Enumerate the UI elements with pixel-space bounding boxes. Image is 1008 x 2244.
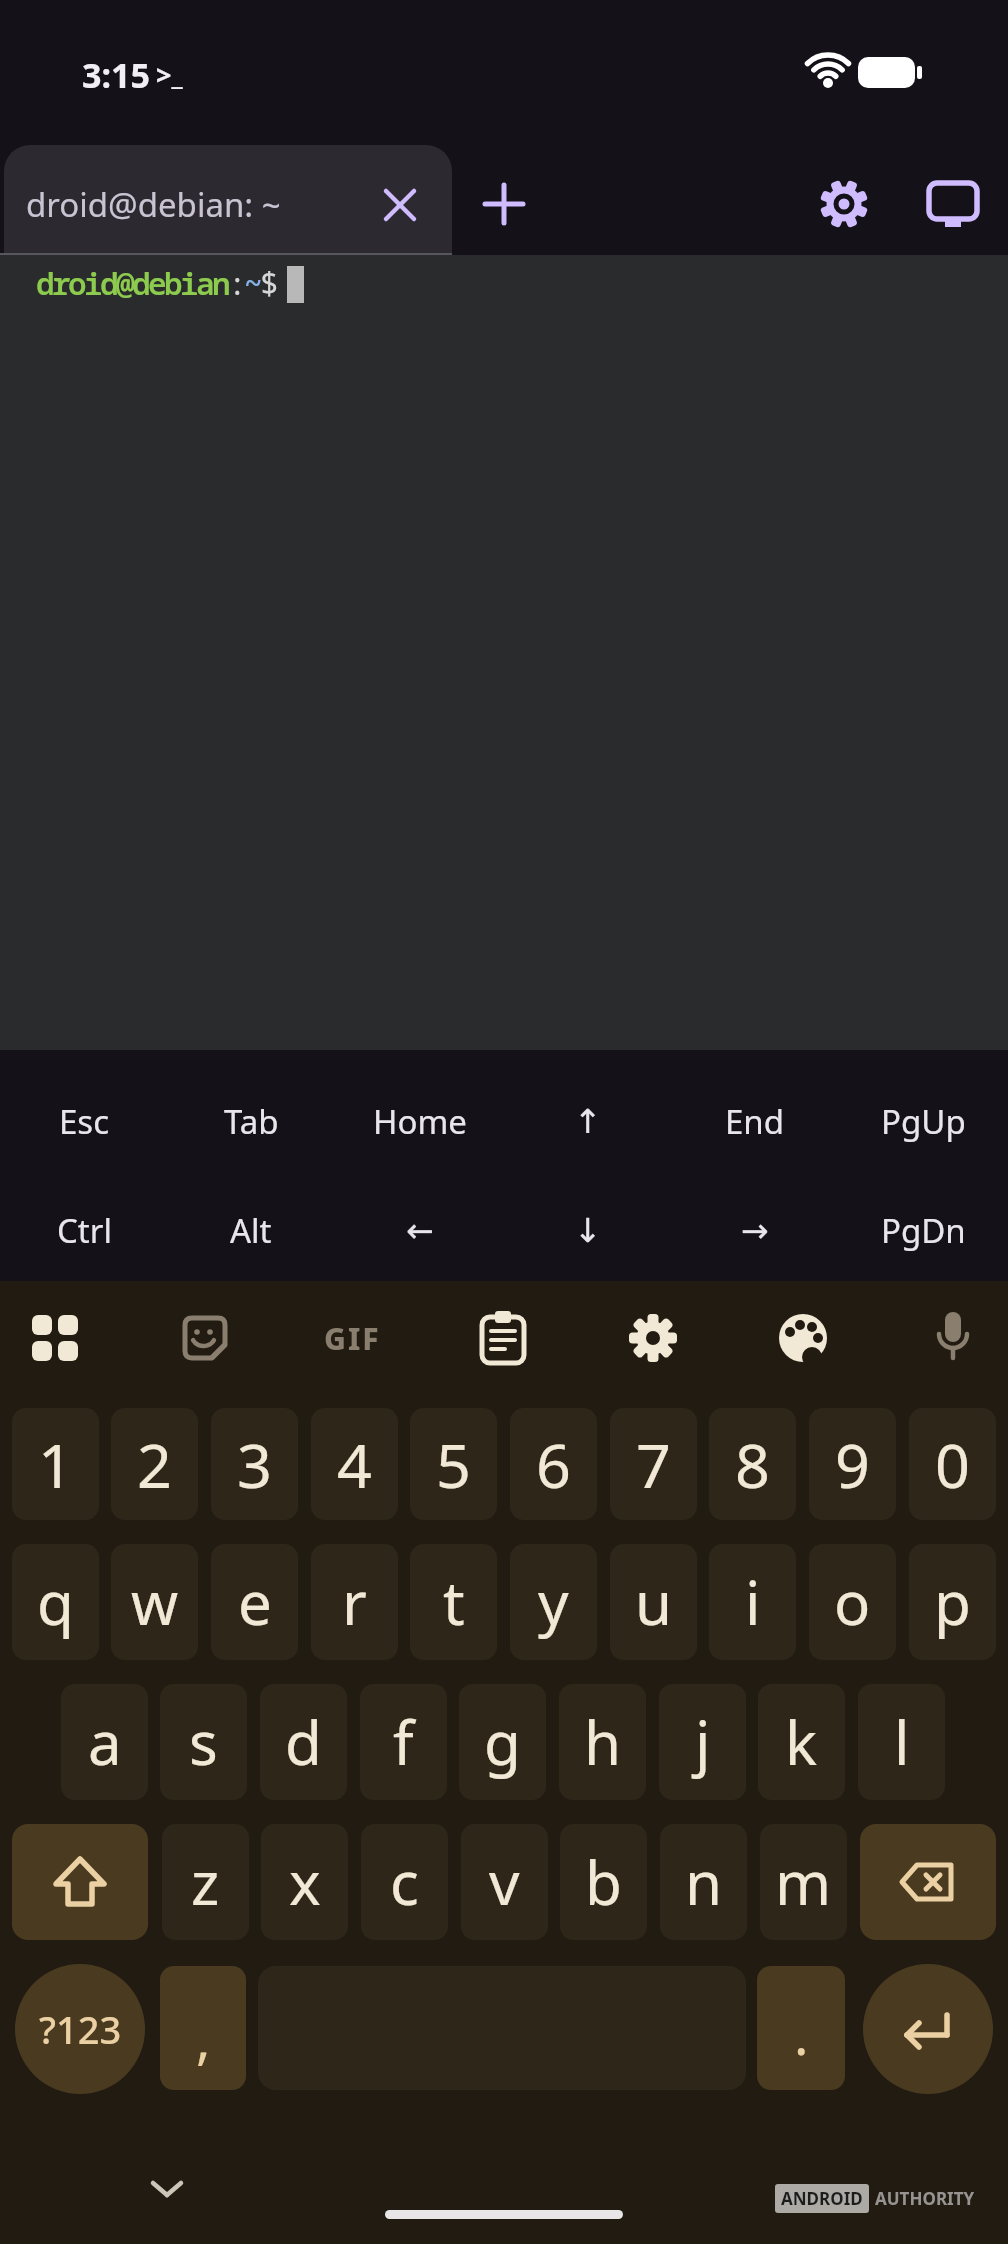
button[interactable]: d [260, 1684, 347, 1800]
staticText: 3:15 [82, 52, 150, 98]
button[interactable]: m [760, 1824, 847, 1940]
button[interactable]: w [111, 1544, 198, 1660]
staticText: o [834, 1561, 871, 1643]
staticText: → [741, 1211, 769, 1249]
staticText: e [238, 1561, 272, 1643]
staticText: b [585, 1841, 622, 1923]
staticText: 9 [835, 1423, 870, 1506]
button[interactable]: e [211, 1544, 298, 1660]
button[interactable] [928, 180, 978, 230]
staticText: ↑ [574, 1102, 602, 1140]
button[interactable]: . [757, 1966, 845, 2090]
button[interactable]: p [909, 1544, 996, 1660]
button[interactable]: a [61, 1684, 148, 1800]
staticText: , [196, 2001, 211, 2075]
staticText: Alt [230, 1208, 272, 1253]
button[interactable]: z [162, 1824, 249, 1940]
button[interactable]: b [560, 1824, 647, 1940]
staticText: 2 [137, 1423, 172, 1506]
staticText: m [775, 1841, 832, 1923]
staticText: PgDn [881, 1208, 966, 1253]
button[interactable]: s [160, 1684, 247, 1800]
button[interactable]: ← [350, 1197, 490, 1263]
button[interactable]: 5 [410, 1408, 497, 1520]
button[interactable]: GIF [302, 1312, 402, 1364]
staticText: ?123 [39, 2003, 122, 2055]
staticText: Home [373, 1099, 467, 1144]
staticText: y [538, 1561, 569, 1643]
button[interactable]: , [160, 1966, 246, 2090]
button[interactable]: r [311, 1544, 398, 1660]
staticText: ANDROID [781, 2187, 863, 2210]
button[interactable]: t [410, 1544, 497, 1660]
button[interactable]: c [361, 1824, 448, 1940]
button[interactable] [182, 1315, 228, 1361]
button[interactable] [778, 1313, 828, 1363]
button[interactable]: x [261, 1824, 348, 1940]
button[interactable] [479, 1311, 527, 1365]
button[interactable] [628, 1313, 678, 1363]
button[interactable]: 8 [709, 1408, 796, 1520]
button[interactable]: Alt [181, 1197, 321, 1263]
button[interactable]: Home [350, 1088, 490, 1154]
button[interactable] [485, 185, 523, 223]
button[interactable]: l [858, 1684, 945, 1800]
button[interactable] [31, 1314, 79, 1362]
staticText: PgUp [881, 1099, 966, 1144]
button[interactable]: q [12, 1544, 99, 1660]
button[interactable]: 3 [211, 1408, 298, 1520]
staticText: 4 [337, 1423, 372, 1506]
button[interactable]: j [659, 1684, 746, 1800]
button[interactable]: PgDn [853, 1197, 993, 1263]
staticText: Esc [59, 1099, 109, 1144]
button[interactable]: y [510, 1544, 597, 1660]
button[interactable]: 6 [510, 1408, 597, 1520]
button[interactable]: droid@debian: ~ [4, 145, 452, 255]
button[interactable] [820, 180, 868, 228]
button[interactable]: 0 [909, 1408, 996, 1520]
button[interactable] [12, 1824, 148, 1940]
staticText: d [285, 1701, 322, 1783]
button[interactable] [860, 1824, 996, 1940]
button[interactable]: ↑ [518, 1088, 658, 1154]
staticText: ↓ [574, 1211, 602, 1249]
staticText: >_ [156, 56, 183, 93]
staticText: u [635, 1561, 673, 1643]
button[interactable]: Ctrl [14, 1197, 154, 1263]
button[interactable]: k [758, 1684, 845, 1800]
button[interactable]: Tab [181, 1088, 321, 1154]
button[interactable]: PgUp [853, 1088, 993, 1154]
button[interactable]: n [660, 1824, 747, 1940]
button[interactable]: ↓ [518, 1197, 658, 1263]
button[interactable]: o [809, 1544, 896, 1660]
button[interactable]: Esc [14, 1088, 154, 1154]
button[interactable]: f [360, 1684, 447, 1800]
button[interactable] [863, 1964, 993, 2094]
staticText: x [289, 1841, 321, 1923]
button[interactable]: u [610, 1544, 697, 1660]
button[interactable] [933, 1312, 973, 1364]
button[interactable]: 7 [610, 1408, 697, 1520]
button[interactable]: h [559, 1684, 646, 1800]
staticText: 7 [636, 1423, 671, 1506]
button[interactable]: g [459, 1684, 546, 1800]
button[interactable]: 1 [12, 1408, 99, 1520]
button[interactable] [150, 2178, 184, 2200]
staticText: droid@debian: ~ [26, 182, 281, 227]
staticText: GIF [324, 1318, 381, 1359]
button[interactable]: i [709, 1544, 796, 1660]
button[interactable]: End [685, 1088, 825, 1154]
staticText: 6 [536, 1423, 571, 1506]
button[interactable]: 4 [311, 1408, 398, 1520]
staticText: h [584, 1701, 622, 1783]
staticText: droid@debian:~$ [36, 262, 276, 304]
button[interactable]: 2 [111, 1408, 198, 1520]
button[interactable]: v [461, 1824, 548, 1940]
staticText: v [489, 1841, 520, 1923]
staticText: Tab [224, 1099, 279, 1144]
button[interactable]: → [685, 1197, 825, 1263]
staticText: g [484, 1701, 521, 1783]
button[interactable]: 9 [809, 1408, 896, 1520]
button[interactable]: ?123 [15, 1964, 145, 2094]
